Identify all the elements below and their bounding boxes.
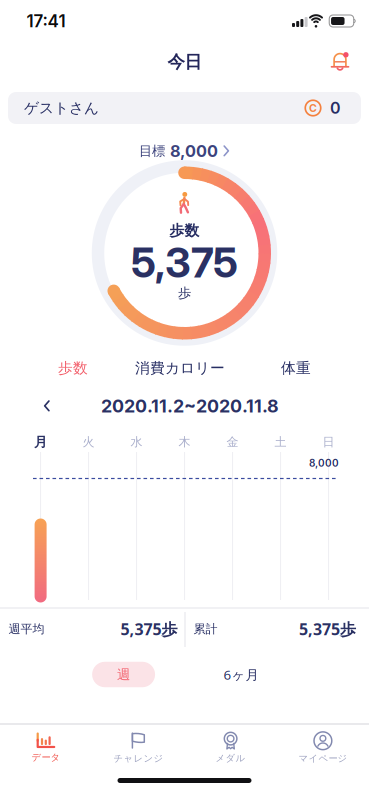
staticText: チャレンジ xyxy=(113,753,163,764)
staticText: 金 xyxy=(227,435,239,449)
staticText: 5,375歩 xyxy=(120,618,177,640)
button[interactable]: チャレンジ xyxy=(98,726,178,770)
staticText: 6ヶ月 xyxy=(223,666,258,683)
button[interactable]: 週 xyxy=(92,662,155,687)
staticText: 2020.11.2~2020.11.8 xyxy=(101,395,279,417)
staticText: 体重 xyxy=(281,359,311,377)
staticText: 5,375 xyxy=(131,237,238,287)
staticText: 0 xyxy=(330,98,341,118)
button[interactable]: データ xyxy=(6,726,86,770)
staticText: 歩数 xyxy=(58,359,88,377)
button[interactable]: Notifications xyxy=(330,51,349,71)
staticText: 8,000 xyxy=(309,457,339,469)
button[interactable]: 目標 xyxy=(139,141,230,161)
staticText: マイページ xyxy=(298,753,347,764)
staticText: 5,375歩 xyxy=(299,618,356,640)
button[interactable]: ゲストさん xyxy=(8,92,361,124)
staticText: 土 xyxy=(275,435,287,449)
button[interactable]: メダル xyxy=(191,726,271,770)
staticText: 週 xyxy=(117,666,130,683)
button[interactable]: 体重 xyxy=(281,359,311,377)
staticText: 木 xyxy=(179,435,191,449)
staticText: メダル xyxy=(216,752,246,764)
staticText: 歩 xyxy=(178,285,191,301)
staticText: 火 xyxy=(83,435,95,449)
staticText: データ xyxy=(32,752,61,763)
button[interactable]: マイページ xyxy=(283,726,363,770)
staticText: 歩数 xyxy=(169,221,199,239)
staticText: 消費カロリー xyxy=(135,359,225,377)
staticText: 累計 xyxy=(193,622,217,636)
staticText: 月 xyxy=(34,434,47,450)
staticText: 水 xyxy=(131,435,143,449)
staticText: 17:41 xyxy=(26,11,65,31)
button[interactable]: 歩数 xyxy=(58,359,88,377)
staticText: C xyxy=(309,101,317,114)
staticText: 8,000 xyxy=(170,141,218,161)
button[interactable]: 6ヶ月 xyxy=(209,662,272,687)
button[interactable]: Previous week xyxy=(43,400,50,412)
staticText: 週平均 xyxy=(8,622,44,636)
staticText: 目標 xyxy=(139,143,165,159)
staticText: 日 xyxy=(323,435,335,449)
staticText: 今日 xyxy=(167,51,201,73)
button[interactable]: 消費カロリー xyxy=(135,359,225,377)
staticText: ゲストさん xyxy=(24,99,99,117)
